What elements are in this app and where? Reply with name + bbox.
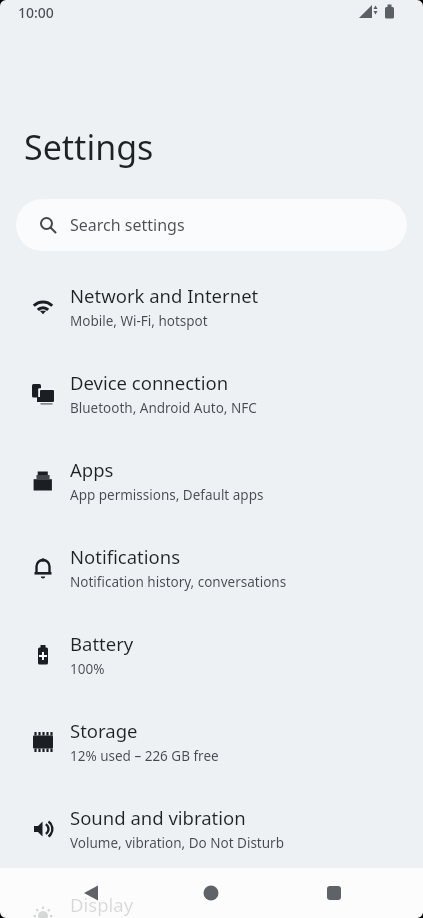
staticText: Apps [70, 457, 114, 482]
button[interactable]: Device connection [0, 350, 423, 437]
staticText: Volume, vibration, Do Not Disturb [70, 834, 284, 852]
button[interactable]: Display [0, 872, 423, 918]
button[interactable]: Sound and vibration [0, 785, 423, 872]
button[interactable] [310, 868, 358, 918]
button[interactable] [67, 868, 115, 918]
staticText: Search settings [70, 214, 185, 236]
staticText: Storage [70, 718, 138, 743]
staticText: Settings [24, 124, 154, 170]
staticText: Mobile, Wi-Fi, hotspot [70, 312, 208, 330]
staticText: 10:00 [18, 3, 54, 22]
staticText: Device connection [70, 370, 229, 395]
staticText: Notifications [70, 544, 181, 569]
button[interactable]: Network and Internet [0, 263, 423, 350]
staticText: Bluetooth, Android Auto, NFC [70, 399, 257, 417]
staticText: App permissions, Default apps [70, 486, 264, 504]
staticText: Notification history, conversations [70, 573, 287, 591]
button[interactable]: Notifications [0, 524, 423, 611]
button[interactable] [187, 868, 235, 918]
staticText: Sound and vibration [70, 805, 246, 830]
button[interactable]: Search settings [16, 199, 407, 251]
staticText: 12% used – 226 GB free [70, 747, 219, 765]
staticText: Network and Internet [70, 283, 259, 308]
staticText: Battery [70, 631, 134, 656]
button[interactable]: Battery [0, 611, 423, 698]
button[interactable]: Apps [0, 437, 423, 524]
button[interactable]: Storage [0, 698, 423, 785]
staticText: 100% [70, 660, 105, 678]
staticText: Display [70, 892, 134, 917]
